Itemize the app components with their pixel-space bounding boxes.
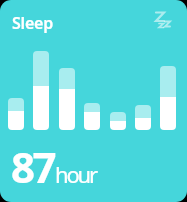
button[interactable]: [152, 8, 178, 30]
staticText: Sleep: [12, 12, 54, 34]
button[interactable]: Sleep: [0, 0, 187, 202]
staticText: 87: [11, 138, 55, 195]
staticText: hour: [55, 159, 96, 189]
